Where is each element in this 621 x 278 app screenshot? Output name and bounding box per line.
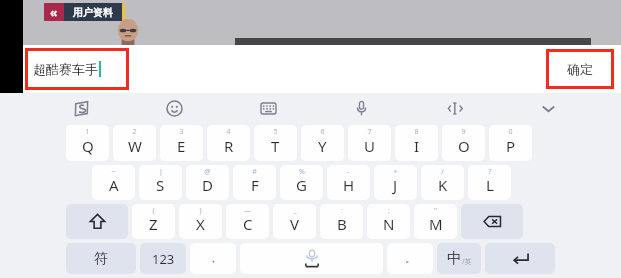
button[interactable]: 符 <box>66 243 136 274</box>
button[interactable]: 3 <box>160 125 203 161</box>
button[interactable]: _ <box>273 204 316 239</box>
button[interactable]: Keyboard layout <box>255 95 281 121</box>
staticText: / <box>441 167 444 177</box>
button[interactable]: Hide keyboard <box>535 95 561 121</box>
staticText: 1 <box>85 127 90 137</box>
staticText: P <box>506 136 516 156</box>
button[interactable]: + <box>374 165 417 200</box>
button[interactable]: / <box>421 165 464 200</box>
staticText: Y <box>318 136 327 156</box>
staticText: D <box>202 175 213 195</box>
staticText: W <box>128 136 142 156</box>
button[interactable]: - <box>327 165 370 200</box>
staticText: ; <box>388 206 390 216</box>
staticText: X <box>196 214 205 234</box>
button[interactable]: | <box>139 165 182 200</box>
staticText: 0 <box>508 127 513 137</box>
staticText: _ <box>293 206 297 216</box>
staticText: G <box>296 175 307 195</box>
button[interactable]: Emoji <box>161 95 187 121</box>
staticText: 中 <box>447 249 462 268</box>
staticText: + <box>393 167 398 177</box>
button[interactable]: % <box>280 165 323 200</box>
staticText: Z <box>149 214 158 234</box>
button[interactable]: ) <box>179 204 222 239</box>
staticText: J <box>393 175 398 195</box>
staticText: 2 <box>132 127 137 137</box>
staticText: « <box>50 4 58 20</box>
staticText: ) <box>199 206 202 216</box>
button[interactable]: @ <box>186 165 229 200</box>
staticText: 。 <box>405 252 415 265</box>
staticText: 符 <box>94 250 108 268</box>
staticText: ( <box>152 206 155 216</box>
button[interactable]: : <box>320 204 363 239</box>
staticText: 确定 <box>567 61 593 77</box>
button[interactable]: Voice input <box>348 95 374 121</box>
button[interactable]: ~ <box>92 165 135 200</box>
staticText: M <box>429 214 443 234</box>
button[interactable]: 123 <box>140 243 186 274</box>
staticText: 5 <box>273 127 278 137</box>
button[interactable]: Enter <box>485 243 555 274</box>
staticText: " <box>434 206 437 216</box>
staticText: R <box>224 136 234 156</box>
button[interactable]: 6 <box>301 125 344 161</box>
button[interactable]: 2 <box>113 125 156 161</box>
staticText: — <box>244 206 251 216</box>
staticText: 123 <box>152 250 175 268</box>
button[interactable]: Space <box>240 243 383 274</box>
button[interactable]: ; <box>367 204 410 239</box>
staticText: 8 <box>414 127 419 137</box>
staticText: 4 <box>226 127 231 137</box>
button[interactable]: — <box>226 204 269 239</box>
button[interactable]: 0 <box>489 125 532 161</box>
staticText: C <box>243 214 253 234</box>
button[interactable]: 。 <box>387 243 433 274</box>
staticText: 用户资料 <box>73 6 113 19</box>
staticText: L <box>486 175 494 195</box>
button[interactable]: Move cursor <box>442 95 468 121</box>
button[interactable]: 超酷赛车手 <box>25 48 129 90</box>
button[interactable]: Backspace <box>461 204 523 239</box>
button[interactable]: Shift <box>66 204 128 239</box>
button[interactable]: ( <box>132 204 175 239</box>
staticText: U <box>364 136 375 156</box>
staticText: - <box>347 167 350 177</box>
staticText: ? <box>488 167 492 177</box>
staticText: % <box>299 167 305 177</box>
staticText: : <box>341 206 343 216</box>
button[interactable]: 中 <box>437 243 481 274</box>
button[interactable]: " <box>414 204 457 239</box>
button[interactable]: 4 <box>207 125 250 161</box>
button[interactable]: ? <box>468 165 511 200</box>
staticText: S <box>156 175 165 195</box>
staticText: # <box>252 167 257 177</box>
staticText: Q <box>82 136 94 156</box>
button[interactable]: # <box>233 165 276 200</box>
button[interactable]: 8 <box>395 125 438 161</box>
staticText: @ <box>204 167 211 177</box>
staticText: 超酷赛车手 <box>33 61 98 77</box>
staticText: V <box>290 214 300 234</box>
staticText: 3 <box>179 127 184 137</box>
staticText: ， <box>208 252 218 265</box>
staticText: A <box>109 175 119 195</box>
button[interactable]: 5 <box>254 125 297 161</box>
staticText: ~ <box>111 167 116 177</box>
staticText: 9 <box>461 127 466 137</box>
staticText: H <box>343 175 355 195</box>
button[interactable]: 确定 <box>546 49 614 89</box>
staticText: F <box>251 175 259 195</box>
staticText: N <box>383 214 395 234</box>
staticText: O <box>458 136 470 156</box>
button[interactable]: ， <box>190 243 236 274</box>
button[interactable]: Sogou input <box>68 95 94 121</box>
button[interactable]: 7 <box>348 125 391 161</box>
button[interactable]: 9 <box>442 125 485 161</box>
button[interactable]: 1 <box>66 125 109 161</box>
staticText: | <box>159 167 163 177</box>
staticText: I <box>414 136 420 156</box>
button[interactable]: Back <box>44 3 64 21</box>
staticText: /英 <box>462 257 472 267</box>
